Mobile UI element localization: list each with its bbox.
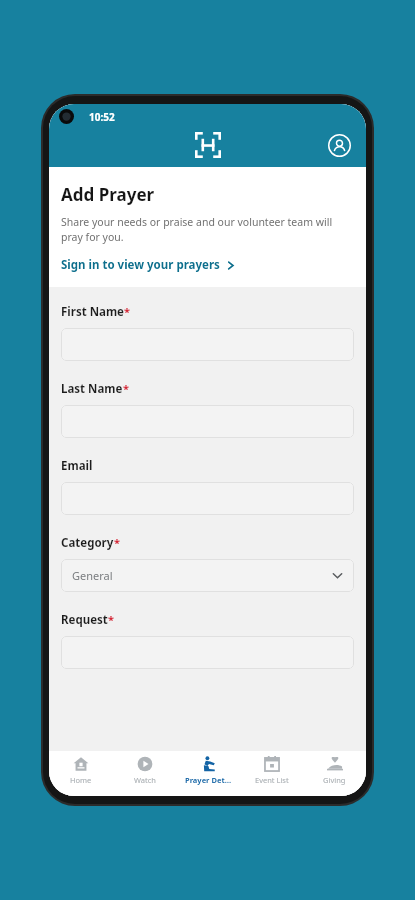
staticText: *: [114, 535, 120, 550]
button[interactable]: Account: [324, 130, 354, 160]
staticText: Sign in to view your prayers: [61, 257, 220, 273]
staticText: Home: [70, 775, 92, 785]
staticText: *: [124, 304, 130, 319]
button[interactable]: Giving: [303, 751, 366, 796]
staticText: General: [72, 568, 113, 583]
button[interactable]: Home: [49, 751, 113, 796]
staticText: Watch: [134, 775, 156, 785]
staticText: Prayer Det…: [185, 775, 232, 785]
staticText: Add Prayer: [61, 183, 155, 206]
staticText: 10:52: [89, 110, 115, 124]
staticText: Email: [61, 458, 93, 474]
button[interactable]: [61, 482, 354, 515]
staticText: Event List: [255, 775, 289, 785]
button[interactable]: [61, 405, 354, 438]
button[interactable]: Event List: [240, 751, 303, 796]
button[interactable]: [61, 636, 354, 669]
staticText: *: [108, 612, 114, 627]
button[interactable]: General: [61, 559, 354, 592]
button[interactable]: Sign in to view your prayers: [61, 257, 235, 273]
button[interactable]: Watch: [113, 751, 177, 796]
staticText: Last Name: [61, 381, 123, 397]
staticText: First Name: [61, 304, 124, 320]
staticText: Request: [61, 612, 108, 628]
staticText: *: [123, 381, 129, 396]
staticText: Category: [61, 535, 114, 551]
staticText: Share your needs or praise and our volun…: [61, 215, 354, 244]
button[interactable]: [61, 328, 354, 361]
button[interactable]: Prayer Det…: [177, 751, 240, 796]
staticText: Giving: [323, 775, 346, 785]
